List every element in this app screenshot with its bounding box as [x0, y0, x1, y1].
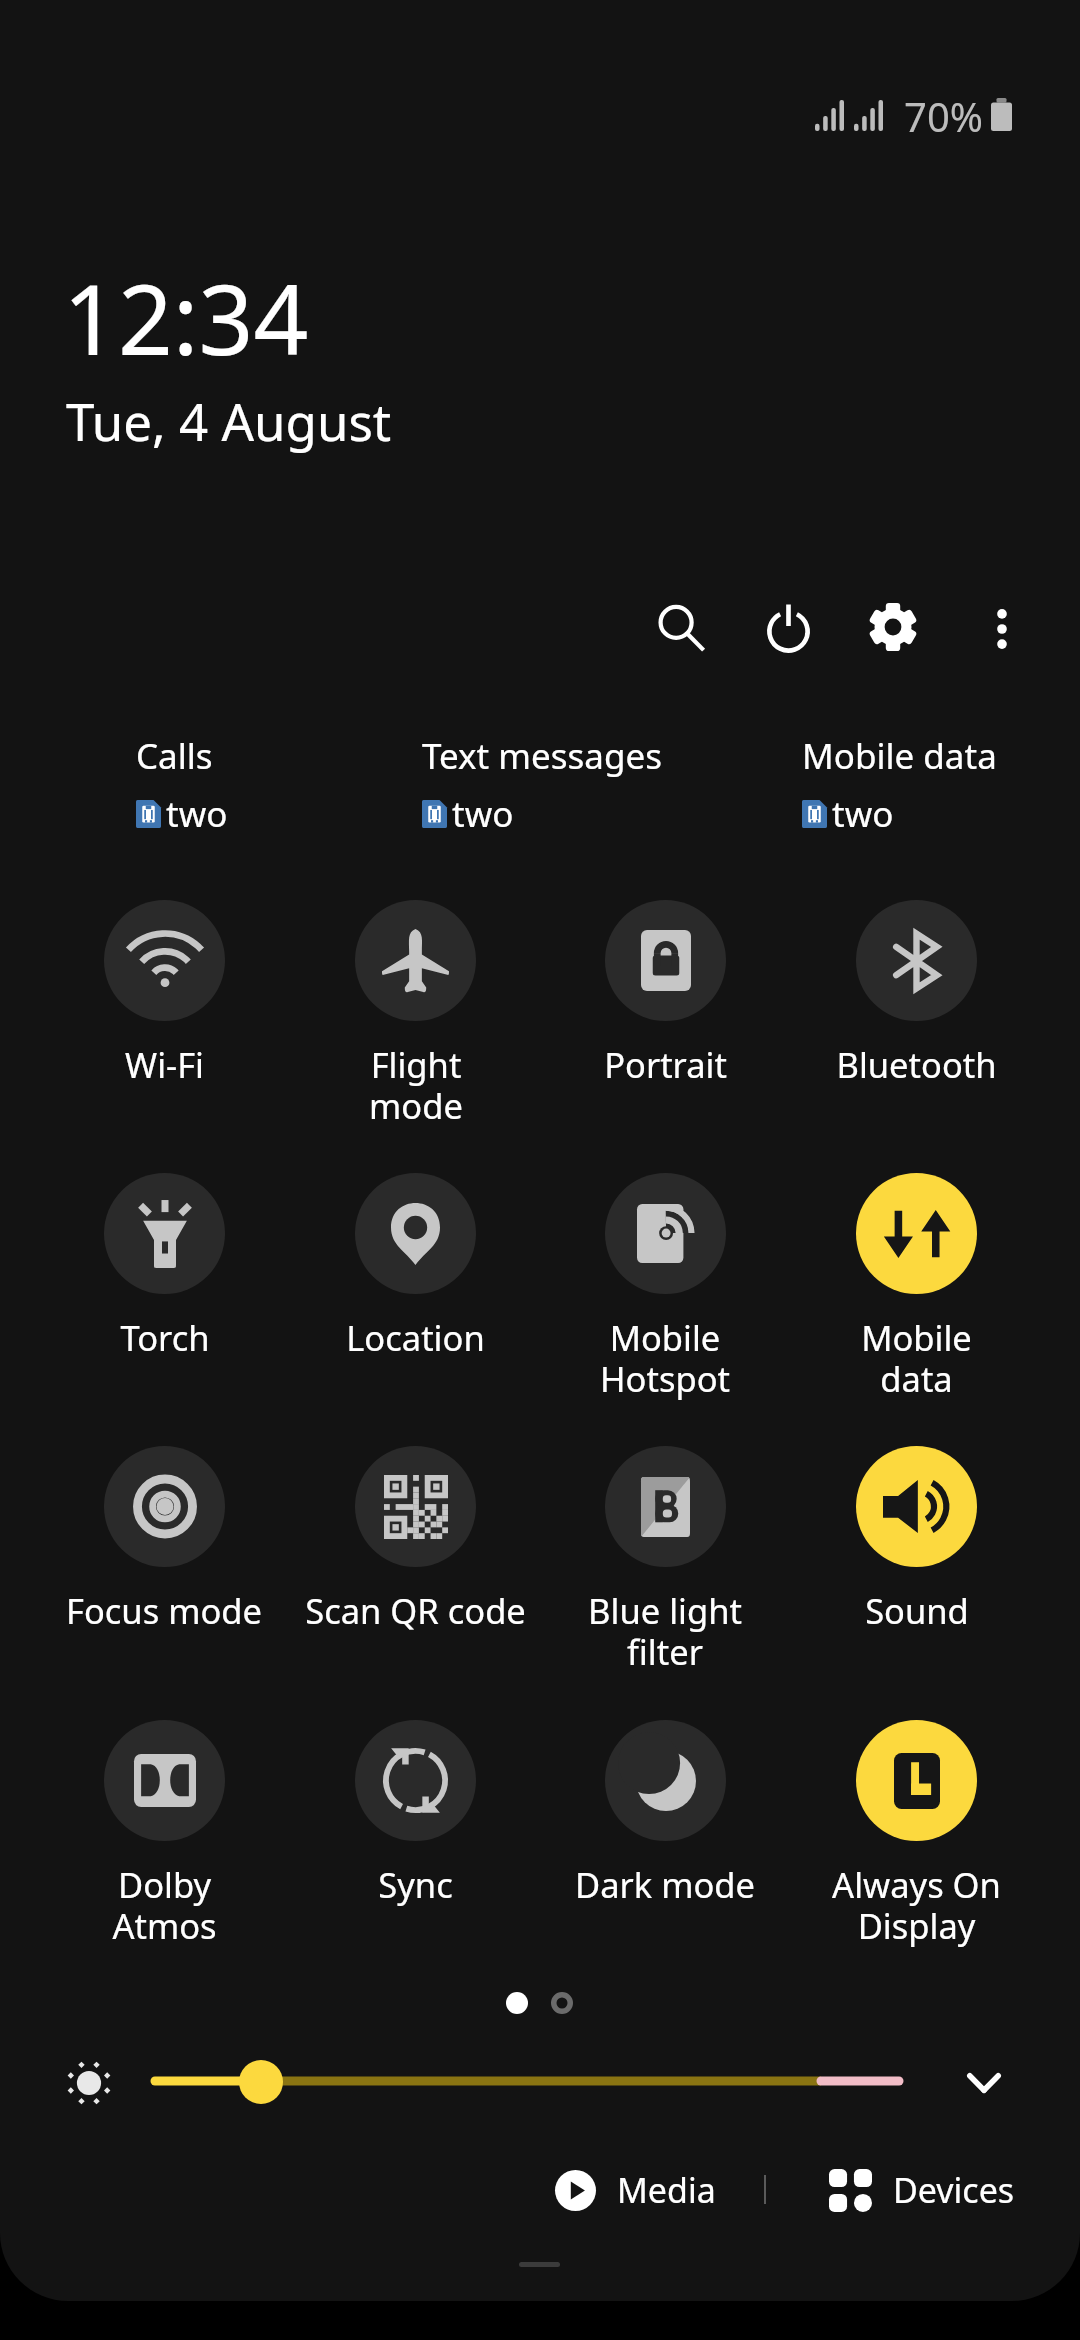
staticText: two: [166, 790, 228, 838]
button[interactable]: Sync: [291, 1710, 539, 1908]
staticText: Blue light filter: [588, 1587, 742, 1675]
button[interactable]: Expand: [940, 2039, 1028, 2127]
button[interactable]: Mobile data: [792, 1163, 1040, 1402]
button[interactable]: Portrait: [541, 890, 789, 1088]
staticText: two: [452, 790, 514, 838]
button[interactable]: Calls: [136, 732, 228, 838]
staticText: 12:34: [63, 252, 309, 383]
button[interactable]: More options: [948, 575, 1056, 683]
staticText: 70%: [904, 89, 983, 143]
button[interactable]: Dark mode: [541, 1710, 789, 1908]
staticText: Torch: [120, 1314, 210, 1361]
staticText: Focus mode: [66, 1587, 262, 1634]
button[interactable]: Sound: [792, 1436, 1040, 1634]
staticText: Bluetooth: [836, 1041, 997, 1088]
staticText: Wi-Fi: [125, 1041, 204, 1088]
button[interactable]: Mobile Hotspot: [541, 1163, 789, 1402]
staticText: Mobile data: [861, 1314, 972, 1402]
staticText: two: [832, 790, 894, 838]
button[interactable]: Media: [555, 2158, 716, 2222]
button[interactable]: Flight mode: [291, 890, 539, 1129]
staticText: Scan QR code: [305, 1587, 526, 1634]
button[interactable]: Scan QR code: [291, 1436, 539, 1634]
staticText: Calls: [136, 732, 213, 780]
button[interactable]: Bluetooth: [792, 890, 1040, 1088]
staticText: Dolby Atmos: [112, 1861, 217, 1949]
button[interactable]: Mobile data: [802, 732, 997, 838]
button[interactable]: Location: [291, 1163, 539, 1361]
button[interactable]: Wi-Fi: [40, 890, 288, 1088]
button[interactable]: Always On Display: [792, 1710, 1040, 1949]
staticText: Always On Display: [832, 1861, 1001, 1949]
button[interactable]: Devices: [829, 2158, 1015, 2222]
button[interactable]: Torch: [40, 1163, 288, 1361]
staticText: Devices: [893, 2167, 1015, 2213]
staticText: Text messages: [422, 732, 662, 780]
staticText: Mobile Hotspot: [600, 1314, 730, 1402]
button[interactable]: Settings: [839, 573, 947, 681]
staticText: Flight mode: [369, 1041, 463, 1129]
staticText: Mobile data: [802, 732, 997, 780]
button[interactable]: Page 2: [551, 1992, 573, 2014]
button[interactable]: Search: [627, 574, 735, 682]
staticText: Sound: [865, 1587, 969, 1634]
staticText: Media: [617, 2167, 716, 2213]
button[interactable]: Text messages: [422, 732, 662, 838]
button[interactable]: Brightness: [155, 2061, 899, 2105]
staticText: Portrait: [604, 1041, 727, 1088]
button[interactable]: Power off: [734, 573, 842, 681]
staticText: Tue, 4 August: [66, 386, 392, 455]
button[interactable]: Page 1: [506, 1992, 528, 2014]
staticText: Location: [346, 1314, 485, 1361]
button[interactable]: Dolby Atmos: [40, 1710, 288, 1949]
button[interactable]: Focus mode: [40, 1436, 288, 1634]
staticText: Sync: [378, 1861, 453, 1908]
button[interactable]: Brightness level: [239, 2060, 283, 2104]
button[interactable]: Blue light filter: [541, 1436, 789, 1675]
staticText: Dark mode: [575, 1861, 755, 1908]
